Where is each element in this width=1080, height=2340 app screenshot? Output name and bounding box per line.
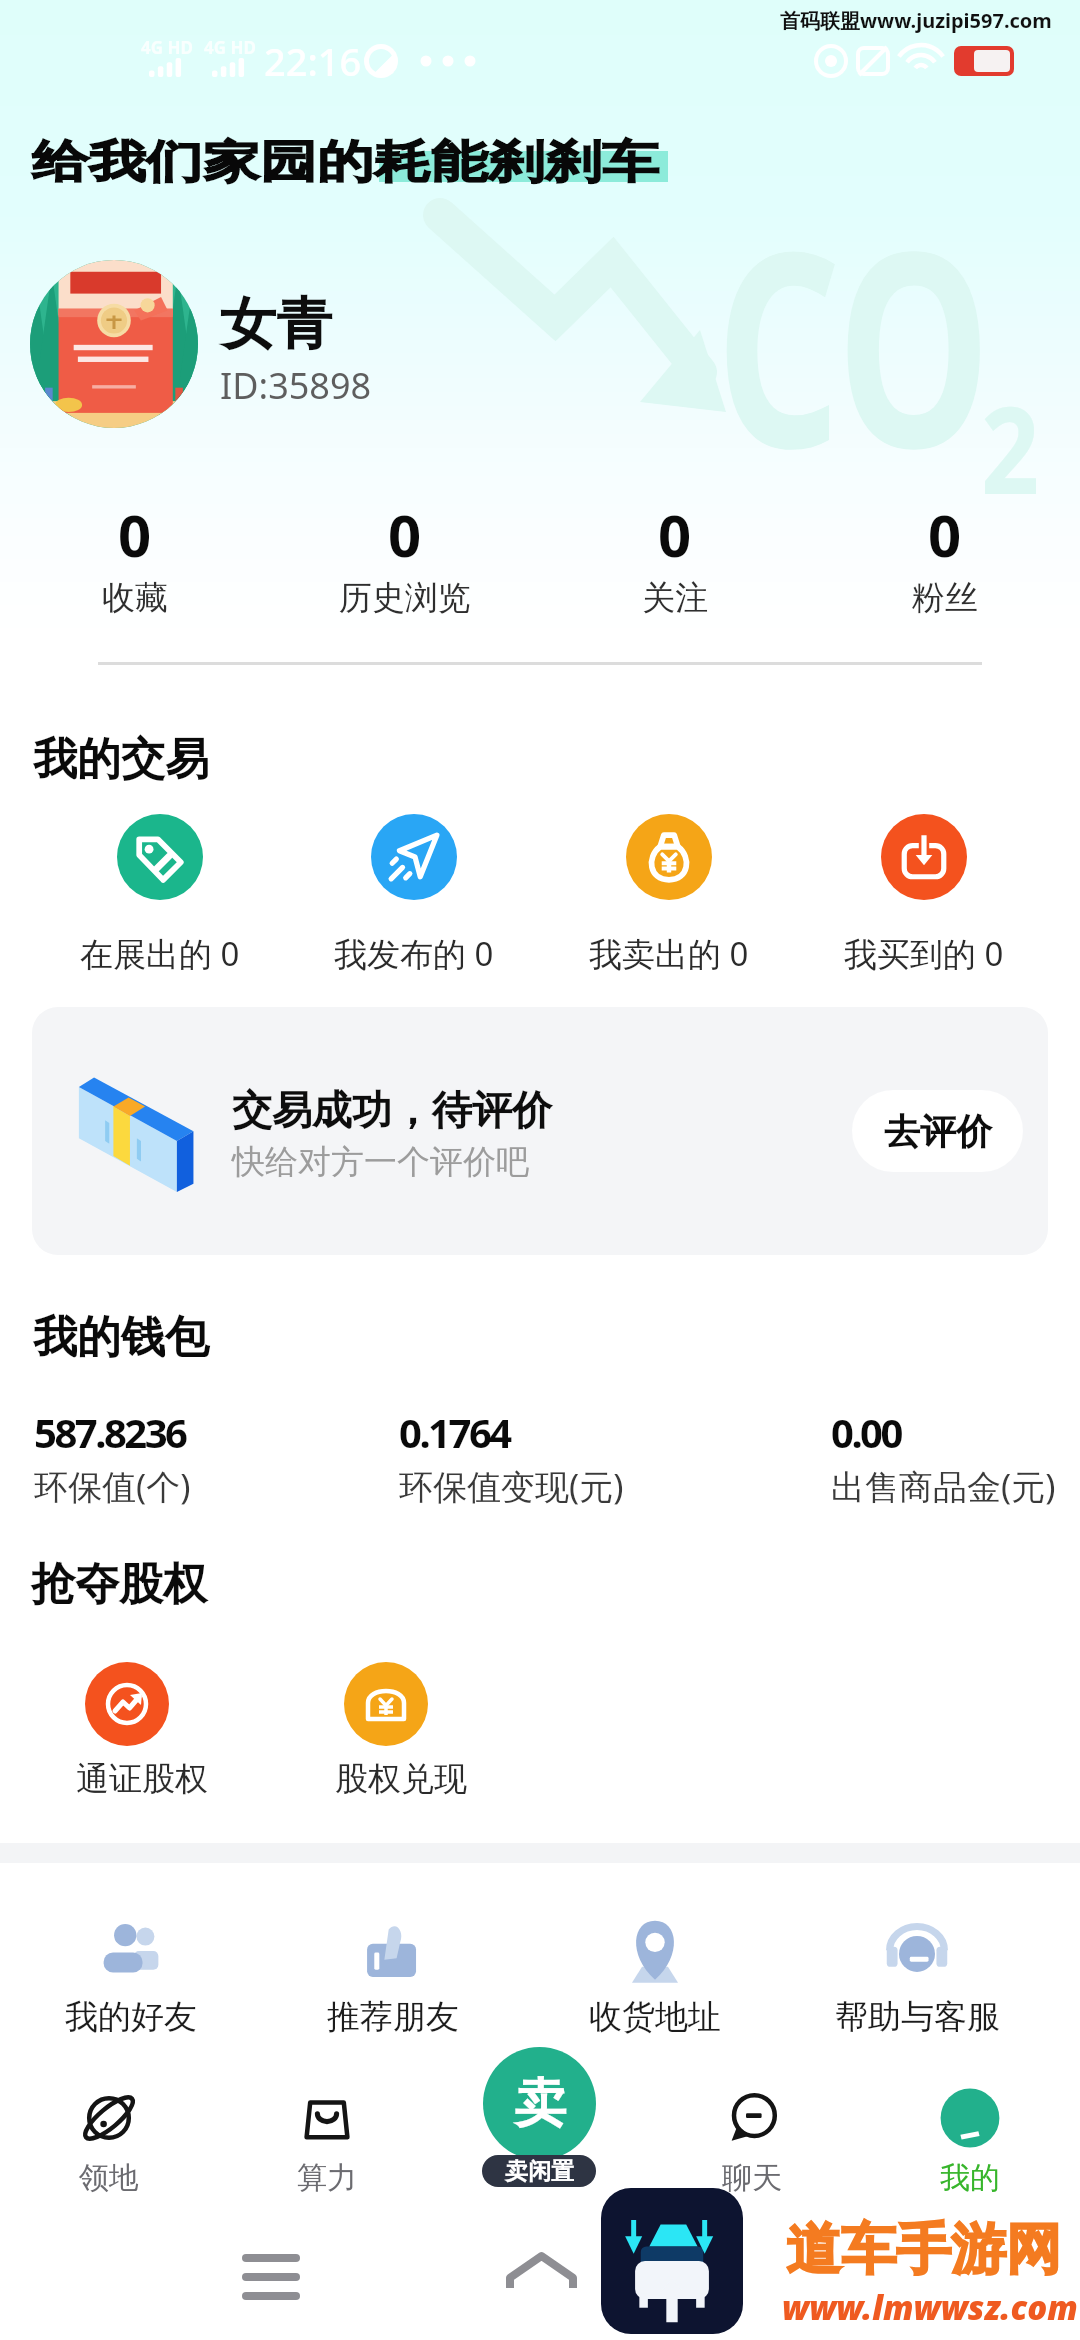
button[interactable]: 我买到的 0: [797, 806, 1051, 986]
staticText: 我的: [940, 2159, 1000, 2197]
staticText: 4G HD: [141, 36, 193, 59]
staticText: 0: [658, 495, 692, 574]
button[interactable]: 帮助与客服: [787, 1915, 1047, 2045]
staticText: 0: [388, 495, 422, 574]
staticText: 通证股权: [76, 1758, 208, 1800]
staticText: 历史浏览: [339, 577, 471, 619]
button[interactable]: 卖闲置: [482, 2155, 596, 2187]
button[interactable]: 0: [0, 495, 270, 625]
staticText: 股权兑现: [335, 1758, 467, 1800]
staticText: 道车手游网: [786, 2215, 1061, 2284]
staticText: 0.00: [831, 1405, 901, 1459]
button[interactable]: 我的: [880, 2080, 1060, 2210]
button[interactable]: 聊天: [662, 2080, 842, 2210]
staticText: 收藏: [102, 577, 168, 619]
staticText: 给我们家园的耗能刹刹车: [32, 134, 659, 190]
button[interactable]: 卖: [483, 2047, 596, 2160]
button[interactable]: 我的好友: [1, 1915, 261, 2045]
button[interactable]: 0: [810, 495, 1080, 625]
button[interactable]: 0: [270, 495, 540, 625]
button[interactable]: 交易成功，待评价: [32, 1007, 1048, 1255]
button[interactable]: 去评价: [852, 1090, 1023, 1172]
staticText: 0.1764: [399, 1405, 510, 1459]
staticText: 卖闲置: [505, 2157, 574, 2186]
staticText: 粉丝: [912, 577, 978, 619]
staticText: 推荐朋友: [327, 1996, 459, 2038]
staticText: 算力: [297, 2159, 357, 2197]
button[interactable]: 我卖出的 0: [542, 806, 796, 986]
staticText: CO: [716, 158, 991, 526]
staticText: 环保值变现(元): [399, 1463, 624, 1509]
staticText: 聊天: [722, 2159, 782, 2197]
staticText: 交易成功，待评价: [232, 1085, 552, 1135]
staticText: 领地: [79, 2159, 139, 2197]
staticText: 首码联盟www.juzipi597.com: [780, 7, 1052, 34]
staticText: 我的好友: [65, 1996, 197, 2038]
staticText: ID:35898: [220, 361, 372, 410]
button[interactable]: 股权兑现: [267, 1655, 521, 1815]
button[interactable]: 0.1764: [399, 1405, 739, 1515]
button[interactable]: 0: [540, 495, 810, 625]
staticText: 帮助与客服: [835, 1996, 1000, 2038]
button[interactable]: 我发布的 0: [287, 806, 541, 986]
button[interactable]: 0.00: [831, 1405, 1080, 1515]
staticText: 我买到的 0: [844, 931, 1004, 976]
staticText: 0: [928, 495, 962, 574]
staticText: 我的交易: [33, 732, 209, 787]
staticText: 去评价: [884, 1109, 992, 1154]
staticText: 4G HD: [204, 36, 256, 59]
other: Recent apps: [246, 2254, 296, 2298]
button[interactable]: 通证股权: [8, 1655, 262, 1815]
staticText: 我发布的 0: [334, 931, 494, 976]
button[interactable]: 587.8236: [34, 1405, 374, 1515]
staticText: 收货地址: [589, 1996, 721, 2038]
other: Home: [506, 2252, 577, 2298]
staticText: 出售商品金(元): [831, 1463, 1056, 1509]
button[interactable]: 推荐朋友: [263, 1915, 523, 2045]
staticText: 快给对方一个评价吧: [232, 1141, 529, 1183]
staticText: 我卖出的 0: [589, 931, 749, 976]
button[interactable]: 算力: [237, 2080, 417, 2210]
staticText: 我的钱包: [33, 1310, 209, 1365]
staticText: 587.8236: [34, 1405, 186, 1459]
staticText: 2: [981, 366, 1040, 529]
staticText: www.lmwwsz.com: [782, 2285, 1078, 2330]
staticText: 0: [118, 495, 152, 574]
staticText: 22:16: [264, 35, 362, 87]
staticText: 环保值(个): [34, 1463, 191, 1509]
button[interactable]: 领地: [19, 2080, 199, 2210]
staticText: 卖: [514, 2071, 566, 2137]
button[interactable]: 在展出的 0: [33, 806, 287, 986]
staticText: 抢夺股权: [31, 1557, 207, 1612]
staticText: 女青: [220, 289, 332, 360]
staticText: 在展出的 0: [80, 931, 240, 976]
button[interactable]: Profile avatar: [30, 260, 198, 428]
staticText: 关注: [642, 577, 708, 619]
button[interactable]: 收货地址: [525, 1915, 785, 2045]
